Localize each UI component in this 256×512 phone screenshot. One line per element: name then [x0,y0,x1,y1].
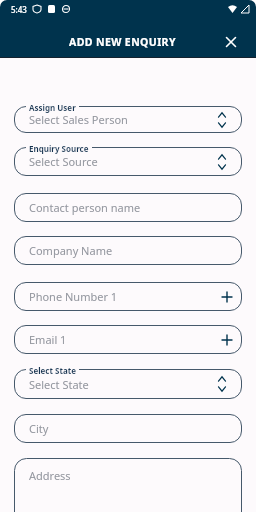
button[interactable]: Email 1 [14,325,242,354]
button[interactable]: City [14,414,242,443]
button[interactable] [222,33,240,51]
staticText: Address [29,468,71,483]
staticText: Enquiry Source [29,143,89,154]
button[interactable]: Phone Number 1 [14,282,242,311]
staticText: ADD NEW ENQUIRY [69,35,176,49]
button[interactable]: Select State [14,369,242,399]
staticText: Select Sales Person [29,112,128,127]
staticText: Select Source [29,154,98,169]
button[interactable]: Contact person name [14,193,242,222]
staticText: Phone Number 1 [29,289,118,304]
staticText: Select State [29,365,76,376]
button[interactable]: Select Sales Person [14,106,242,133]
staticText: Assign User [29,102,76,113]
button[interactable]: Select Source [14,147,242,176]
staticText: 5:43 [11,4,27,15]
staticText: City [29,421,49,436]
staticText: Email 1 [29,332,67,347]
staticText: Company Name [29,243,113,258]
staticText: Select State [29,377,89,392]
staticText: Contact person name [29,200,141,215]
button[interactable]: Address [14,458,242,512]
button[interactable]: Company Name [14,236,242,265]
